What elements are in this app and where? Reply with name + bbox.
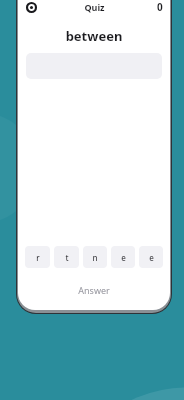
staticText: Quiz	[84, 1, 105, 13]
button[interactable]: n	[83, 246, 107, 268]
button[interactable]: r	[25, 246, 50, 268]
staticText: e	[121, 252, 126, 263]
staticText: Answer	[78, 284, 110, 296]
staticText: 0	[157, 0, 163, 14]
staticText: between	[18, 27, 170, 45]
staticText: r	[36, 252, 40, 263]
button[interactable]: Settings	[23, 0, 39, 15]
staticText: n	[92, 252, 98, 263]
button[interactable]: Answer	[18, 284, 170, 296]
button[interactable]: e	[111, 246, 135, 268]
button[interactable]: e	[139, 246, 163, 268]
staticText: t	[65, 252, 69, 263]
staticText: e	[149, 252, 154, 263]
button[interactable]: Score	[154, 0, 166, 16]
button[interactable]: t	[54, 246, 79, 268]
